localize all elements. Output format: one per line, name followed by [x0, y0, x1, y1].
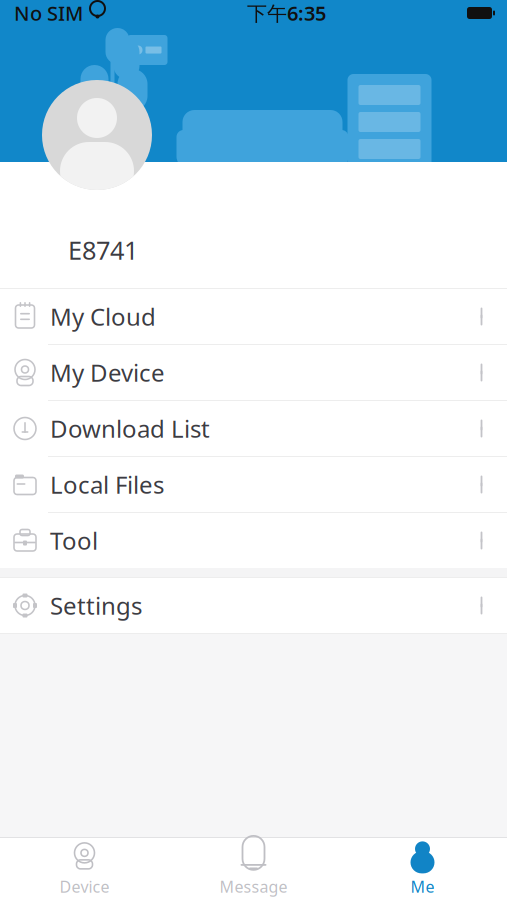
button[interactable]: My Device — [0, 345, 507, 400]
staticText: E8741 — [68, 233, 138, 267]
button[interactable]: Local Files — [0, 457, 507, 512]
staticText: Local Files — [50, 469, 164, 500]
button[interactable]: Me — [338, 838, 507, 900]
button[interactable]: Settings — [0, 578, 507, 633]
staticText: Me — [410, 876, 434, 897]
button[interactable]: Message — [169, 838, 338, 900]
staticText: Settings — [50, 590, 142, 621]
staticText: Tool — [50, 525, 98, 556]
staticText: No SIM — [14, 0, 83, 26]
staticText: Device — [59, 876, 109, 897]
staticText: 下午6:35 — [247, 0, 326, 26]
button[interactable]: My Cloud — [0, 289, 507, 344]
button[interactable]: Tool — [0, 513, 507, 568]
staticText: My Cloud — [50, 301, 156, 332]
staticText: Message — [219, 876, 287, 897]
button[interactable]: Download List — [0, 401, 507, 456]
button[interactable]: Device — [0, 838, 169, 900]
staticText: Download List — [50, 413, 210, 444]
staticText: My Device — [50, 357, 165, 388]
